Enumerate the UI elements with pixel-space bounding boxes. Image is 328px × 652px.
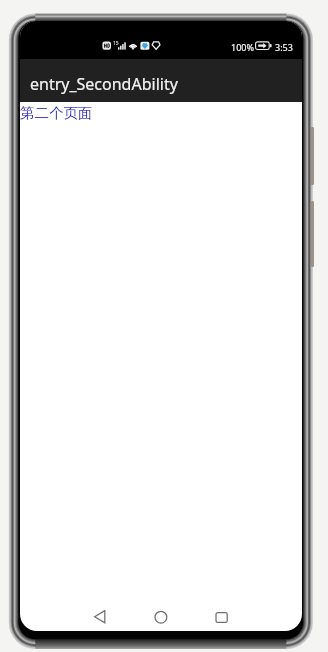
other: Power <box>311 201 314 267</box>
staticText: 3:53 <box>275 41 293 53</box>
button[interactable]: Recent apps <box>206 605 236 629</box>
other: Volume <box>311 127 314 185</box>
staticText: 第二个页面 <box>20 104 93 122</box>
staticText: 15 <box>113 40 119 47</box>
button[interactable]: Back <box>85 605 115 629</box>
button[interactable] <box>20 59 302 102</box>
button[interactable]: Home <box>146 605 176 629</box>
staticText: 100% <box>231 41 254 53</box>
staticText: entry_SecondAbility <box>30 73 178 95</box>
